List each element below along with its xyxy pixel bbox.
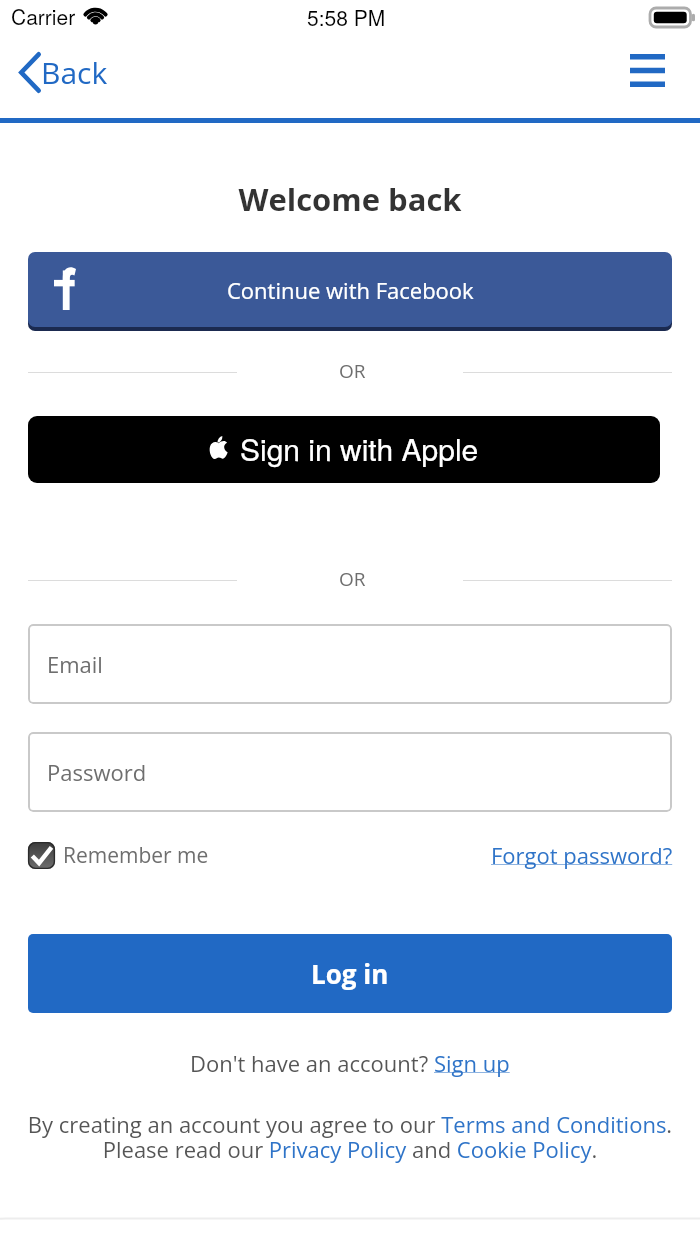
button[interactable]: Email [28, 624, 672, 704]
button[interactable]: Remember me [28, 841, 209, 870]
button[interactable]: Menu [620, 43, 675, 98]
staticText: Forgot password? [491, 840, 673, 870]
staticText: Email [47, 649, 103, 679]
staticText: Password [47, 757, 147, 787]
staticText: Continue with Facebook [227, 275, 474, 305]
staticText: Sign up [434, 1048, 510, 1078]
staticText: 5:58 PM [307, 2, 386, 32]
button[interactable]: Sign up [434, 1048, 510, 1078]
button[interactable]: Password [28, 732, 672, 812]
staticText: OR [339, 566, 366, 590]
button[interactable]: Continue with Facebook [28, 252, 672, 327]
staticText: Welcome back [0, 178, 700, 220]
button[interactable]: Back [11, 45, 116, 100]
staticText: Don't have an account? [190, 1048, 434, 1078]
button[interactable]: Forgot password? [491, 840, 673, 870]
staticText: Remember me [63, 841, 209, 870]
button[interactable]: Log in [28, 934, 672, 1013]
button[interactable]: Sign in with Apple [28, 416, 660, 483]
staticText: Log in [311, 956, 389, 991]
staticText: By creating an account you agree to our … [0, 1109, 700, 1165]
staticText: Back [41, 52, 108, 93]
staticText: OR [339, 358, 366, 382]
staticText: Sign in with Apple [240, 427, 479, 470]
staticText: Carrier [11, 1, 76, 31]
